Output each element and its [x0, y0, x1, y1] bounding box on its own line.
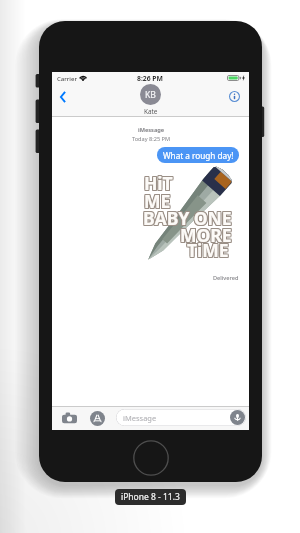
staticText: 8:26 PM	[137, 74, 163, 83]
staticText: BABY ONE	[144, 205, 233, 229]
staticText: Today 8:25 PM	[132, 135, 170, 143]
staticText: BABY ONE	[144, 206, 233, 230]
staticText: MORE	[181, 224, 233, 248]
staticText: HiT	[144, 172, 173, 196]
staticText: TiME	[188, 237, 230, 261]
staticText: ME	[145, 189, 172, 213]
staticText: TiME	[188, 238, 230, 262]
staticText: ME	[143, 189, 170, 213]
button[interactable]: Record audio	[230, 410, 245, 425]
button[interactable]: Sticker: Hit me baby one more time	[143, 170, 235, 262]
staticText: BABY ONE	[144, 207, 233, 231]
staticText: MORE	[180, 222, 232, 246]
staticText: MORE	[180, 223, 232, 247]
staticText: HiT	[144, 171, 173, 195]
staticText: MORE	[181, 223, 233, 247]
staticText: TiME	[187, 238, 229, 262]
button[interactable]: Back	[55, 87, 70, 107]
button[interactable]: iMessage	[116, 409, 246, 426]
staticText: iPhone 8 - 11.3	[121, 491, 180, 503]
staticText: MORE	[179, 222, 231, 246]
staticText: BABY ONE	[143, 206, 232, 230]
staticText: TiME	[186, 237, 228, 261]
staticText: ME	[144, 190, 171, 214]
staticText: ME	[144, 188, 171, 212]
staticText: BABY ONE	[143, 207, 232, 231]
staticText: ME	[144, 189, 171, 213]
button[interactable]: Details	[226, 88, 243, 105]
staticText: MORE	[180, 224, 232, 248]
staticText: BABY ONE	[142, 207, 231, 231]
staticText: TiME	[186, 239, 228, 263]
staticText: HiT	[145, 171, 174, 195]
staticText: BABY ONE	[143, 205, 232, 229]
staticText: ME	[143, 188, 170, 212]
staticText: TiME	[188, 239, 230, 263]
staticText: ME	[143, 190, 170, 214]
staticText: HiT	[145, 172, 174, 196]
staticText: iMessage	[138, 126, 165, 134]
staticText: TiME	[186, 238, 228, 262]
staticText: MORE	[179, 224, 231, 248]
staticText: MORE	[181, 222, 233, 246]
button[interactable]: What a rough day!	[157, 147, 239, 163]
staticText: BABY ONE	[142, 206, 231, 230]
staticText: MORE	[179, 223, 231, 247]
button[interactable]: Camera	[61, 410, 77, 425]
staticText: iMessage	[123, 413, 157, 423]
staticText: Kate	[144, 107, 158, 116]
staticText: HiT	[144, 170, 173, 194]
staticText: BABY ONE	[142, 205, 231, 229]
button[interactable]: Contact Kate	[140, 84, 161, 105]
staticText: Carrier	[57, 75, 77, 83]
staticText: TiME	[187, 239, 229, 263]
button[interactable]: App Store	[89, 410, 105, 426]
staticText: What a rough day!	[163, 150, 234, 161]
staticText: TiME	[187, 237, 229, 261]
staticText: HiT	[145, 170, 174, 194]
staticText: HiT	[143, 172, 172, 196]
staticText: HiT	[143, 170, 172, 194]
staticText: KB	[145, 89, 156, 101]
staticText: ME	[145, 188, 172, 212]
staticText: Delivered	[213, 274, 239, 282]
staticText: HiT	[143, 171, 172, 195]
staticText: ME	[145, 190, 172, 214]
